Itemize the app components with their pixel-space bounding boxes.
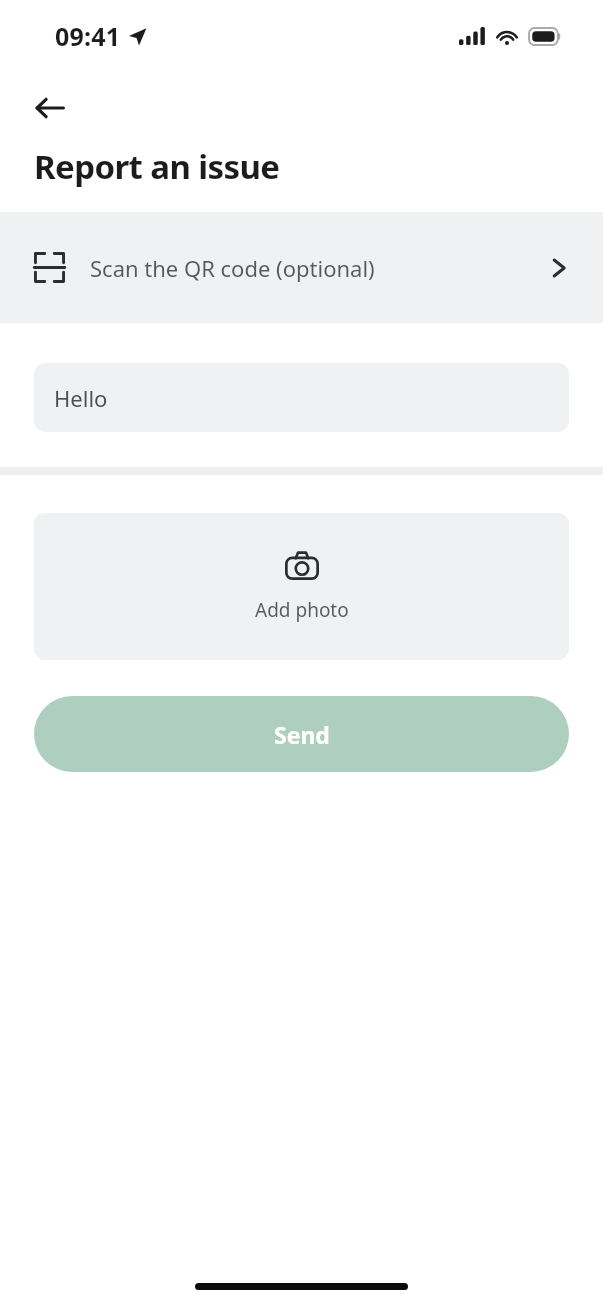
button[interactable]: Hello	[34, 363, 569, 432]
button[interactable]: Add photo	[34, 513, 569, 660]
button[interactable]: Scan the QR code (optional)	[0, 212, 603, 323]
staticText: Hello	[54, 383, 108, 413]
staticText: Report an issue	[34, 144, 280, 189]
staticText: Send	[274, 719, 330, 750]
staticText: 09:41	[55, 19, 121, 53]
staticText: Scan the QR code (optional)	[90, 253, 549, 283]
button[interactable]: Back	[26, 84, 74, 132]
button[interactable]: Send	[34, 696, 569, 772]
staticText: Add photo	[255, 597, 349, 623]
